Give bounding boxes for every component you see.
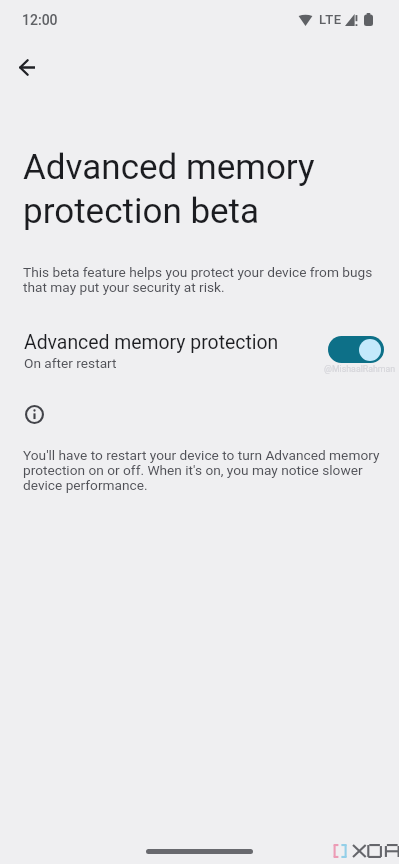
staticText: Advanced memory protection xyxy=(24,332,279,354)
staticText: This beta feature helps you protect your… xyxy=(23,265,381,295)
button[interactable]: Advanced memory protection xyxy=(0,329,399,373)
staticText: On after restart xyxy=(24,356,117,371)
staticText: 12:00 xyxy=(22,12,58,28)
staticText: Advanced memory protection beta xyxy=(23,144,343,232)
staticText: @MishaalRahman xyxy=(324,365,396,374)
button[interactable]: Navigate up xyxy=(7,47,47,87)
staticText: You'll have to restart your device to tu… xyxy=(23,448,381,493)
staticText: LTE xyxy=(319,12,342,27)
button[interactable]: Advanced memory protection, on xyxy=(328,336,384,363)
